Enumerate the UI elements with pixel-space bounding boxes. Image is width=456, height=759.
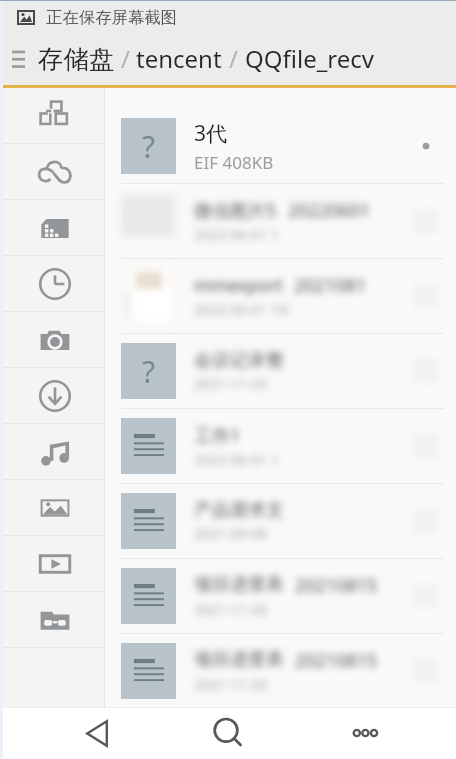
staticText: 项目进度表: [194, 573, 284, 596]
button[interactable]: Videos: [0, 536, 105, 592]
button[interactable]: tencent: [136, 42, 222, 75]
staticText: 3代: [194, 119, 228, 148]
button[interactable]: 产品需求文: [105, 484, 456, 559]
staticText: 2022-06-01 10:: [194, 300, 291, 319]
staticText: 2021081: [294, 273, 367, 298]
staticText: 微信图片5: [194, 198, 277, 223]
button[interactable]: Search: [201, 707, 255, 759]
staticText: /: [229, 42, 238, 75]
staticText: 正在保存屏幕截图: [46, 7, 178, 28]
staticText: 项目进度表: [194, 648, 284, 671]
button[interactable]: 项目进度表: [105, 559, 456, 634]
button[interactable]: Select: [408, 128, 444, 164]
button[interactable]: Music: [0, 424, 105, 480]
staticText: 2021-11-20: [194, 600, 268, 619]
staticText: 会议记录整: [194, 349, 284, 372]
staticText: 存储盘: [38, 43, 115, 75]
staticText: mmexport: [194, 273, 283, 298]
button[interactable]: Folders: [0, 592, 105, 648]
staticText: 20210815: [295, 648, 378, 673]
button[interactable]: ?: [105, 334, 456, 409]
staticText: ?: [142, 126, 156, 167]
staticText: tencent: [136, 42, 222, 75]
staticText: 产品需求文: [194, 499, 284, 522]
button[interactable]: SD card: [0, 200, 105, 256]
button[interactable]: Cloud storage: [0, 144, 105, 200]
staticText: 2021-11-20: [194, 374, 268, 393]
button[interactable]: Back: [70, 707, 124, 759]
button[interactable]: mmexport: [105, 259, 456, 334]
staticText: EIF 408KB: [194, 151, 274, 174]
button[interactable]: 微信图片5: [105, 184, 456, 259]
button[interactable]: QQfile_recv: [245, 42, 374, 75]
button[interactable]: Camera: [0, 312, 105, 368]
staticText: 20210815: [295, 573, 378, 598]
button[interactable]: 项目进度表: [105, 634, 456, 707]
button[interactable]: Categories: [0, 88, 105, 144]
button[interactable]: ?: [105, 109, 456, 184]
staticText: 2022-06-01 1: [194, 225, 279, 244]
button[interactable]: Menu: [12, 44, 38, 74]
staticText: 2022-06-01 1: [194, 450, 279, 469]
staticText: QQfile_recv: [245, 42, 374, 75]
staticText: 2021-09-08: [194, 524, 268, 543]
button[interactable]: Recent: [0, 256, 105, 312]
button[interactable]: 工作1: [105, 409, 456, 484]
button[interactable]: Downloads: [0, 368, 105, 424]
staticText: 工作1: [194, 423, 241, 448]
button[interactable]: Pictures: [0, 480, 105, 536]
staticText: /: [121, 42, 130, 75]
staticText: ?: [142, 351, 156, 392]
staticText: 20220601: [288, 198, 371, 223]
button[interactable]: More options: [338, 707, 392, 759]
staticText: 2021-11-20: [194, 675, 268, 694]
button[interactable]: 存储盘: [38, 43, 115, 75]
